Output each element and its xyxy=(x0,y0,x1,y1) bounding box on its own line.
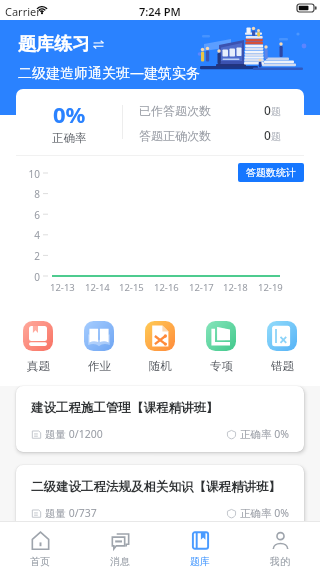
staticText: 错题 xyxy=(271,359,294,373)
staticText: 题量 0/737 xyxy=(45,506,97,520)
button[interactable]: 专项 xyxy=(198,321,244,373)
staticText: 题 xyxy=(271,130,281,143)
button[interactable]: 作业 xyxy=(76,321,122,373)
staticText: 题量 0/1200 xyxy=(45,427,103,441)
button[interactable]: 我的 xyxy=(240,522,320,568)
staticText: 已作答题次数 xyxy=(139,103,211,118)
button[interactable]: 消息 xyxy=(80,522,160,568)
staticText: 6 xyxy=(18,208,40,222)
staticText: 真题 xyxy=(27,359,50,373)
staticText: 正确率 xyxy=(52,131,87,145)
staticText: 12-15 xyxy=(119,281,144,294)
staticText: 题 xyxy=(271,105,281,118)
staticText: 12-14 xyxy=(85,281,110,294)
button[interactable]: 切换 xyxy=(93,39,104,50)
button[interactable]: 建设工程施工管理【课程精讲班】 xyxy=(16,386,304,452)
staticText: Carrier xyxy=(5,4,41,19)
staticText: 随机 xyxy=(149,359,172,373)
staticText: 题库 xyxy=(190,555,210,568)
staticText: 0 xyxy=(18,270,40,284)
button[interactable]: 题库 xyxy=(160,522,240,568)
staticText: 正确率 0% xyxy=(240,427,289,441)
staticText: 专项 xyxy=(210,359,233,373)
button[interactable]: 二级建设工程法规及相关知识【课程精讲班】 xyxy=(16,465,304,531)
staticText: 12-13 xyxy=(50,281,75,294)
staticText: 7:24 PM xyxy=(139,4,181,19)
staticText: 0% xyxy=(53,99,86,129)
staticText: 0 xyxy=(264,102,271,118)
staticText: 我的 xyxy=(270,555,290,568)
staticText: 二级建设工程法规及相关知识【课程精讲班】 xyxy=(31,479,281,495)
staticText: 二级建造师通关班—建筑实务 xyxy=(18,63,200,82)
staticText: 首页 xyxy=(30,555,50,568)
button[interactable]: 错题 xyxy=(259,321,305,373)
staticText: 12-16 xyxy=(154,281,179,294)
staticText: 建设工程施工管理【课程精讲班】 xyxy=(31,400,219,416)
staticText: 10 xyxy=(18,167,40,181)
staticText: 4 xyxy=(18,228,40,242)
staticText: 消息 xyxy=(110,555,130,568)
button[interactable]: 首页 xyxy=(0,522,80,568)
staticText: 12-18 xyxy=(223,281,248,294)
staticText: 0 xyxy=(264,127,271,143)
staticText: 作业 xyxy=(88,359,111,373)
staticText: 12-19 xyxy=(258,281,283,294)
button[interactable]: 真题 xyxy=(15,321,61,373)
staticText: 正确率 0% xyxy=(240,506,289,520)
staticText: 答题数统计 xyxy=(246,166,296,179)
staticText: 题库练习 xyxy=(18,33,90,56)
staticText: 2 xyxy=(18,249,40,263)
button[interactable]: 随机 xyxy=(137,321,183,373)
staticText: 答题正确次数 xyxy=(139,128,211,143)
staticText: 8 xyxy=(18,187,40,201)
staticText: 12-17 xyxy=(189,281,214,294)
button[interactable]: 答题数统计 xyxy=(238,163,304,182)
